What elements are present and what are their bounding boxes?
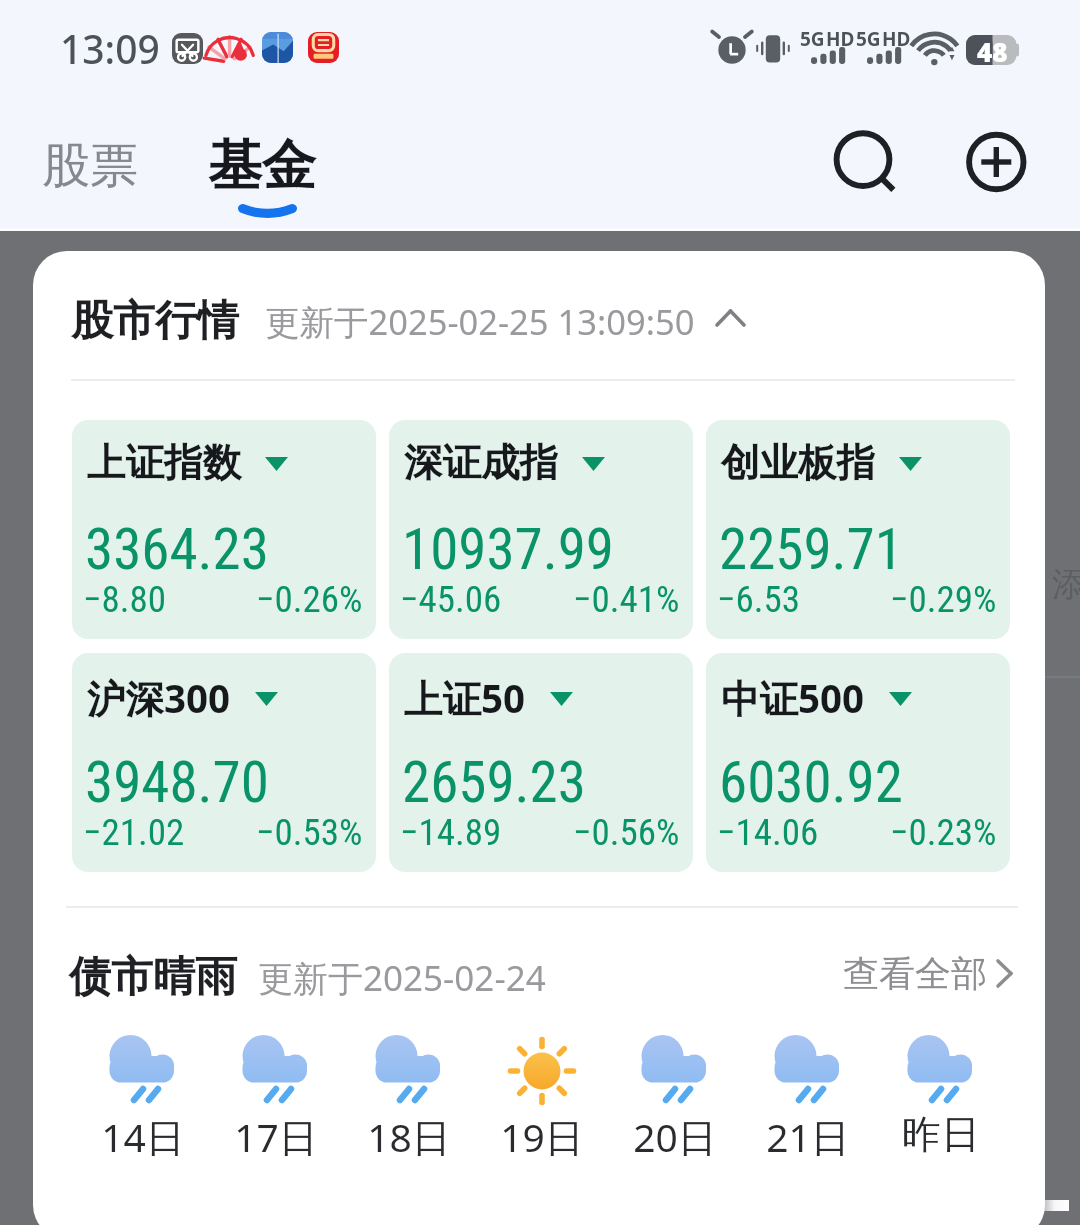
staticText: 沪深300 — [87, 672, 231, 725]
staticText: −14.06 — [717, 811, 819, 854]
button[interactable]: 昨日 — [879, 1027, 1003, 1167]
button[interactable]: Search — [812, 108, 912, 208]
staticText: 6030.92 — [719, 749, 903, 816]
button[interactable]: 19日 — [480, 1027, 604, 1167]
staticText: 股市行情 — [71, 295, 239, 348]
staticText: −6.53 — [717, 578, 801, 621]
staticText: 更新于2025-02-24 — [258, 954, 546, 1002]
staticText: 基金 — [208, 132, 316, 200]
staticText: 19日 — [500, 1110, 584, 1163]
button[interactable]: 14日 — [81, 1027, 205, 1167]
staticText: 更新于2025-02-25 13:09:50 — [265, 298, 695, 345]
staticText: 中证500 — [721, 672, 865, 725]
staticText: 20日 — [633, 1110, 717, 1163]
button[interactable]: 17日 — [214, 1027, 338, 1167]
staticText: −0.26% — [256, 578, 363, 621]
button[interactable]: 上证50 — [389, 653, 693, 872]
staticText: −45.06 — [400, 578, 502, 621]
staticText: −0.29% — [890, 578, 997, 621]
staticText: 3364.23 — [85, 516, 269, 583]
staticText: −0.23% — [890, 811, 997, 854]
staticText: 上证50 — [404, 672, 526, 725]
staticText: 21日 — [766, 1110, 850, 1163]
button[interactable]: 股市行情 — [71, 295, 746, 348]
staticText: 48 — [977, 34, 1008, 64]
button[interactable]: 20日 — [613, 1027, 737, 1167]
button[interactable]: 查看全部 — [843, 951, 1013, 996]
button[interactable]: 债市晴雨 — [69, 951, 1045, 1004]
button[interactable]: 18日 — [347, 1027, 471, 1167]
button[interactable]: 创业板指 — [706, 420, 1010, 639]
button[interactable]: 深证成指 — [389, 420, 693, 639]
staticText: 创业板指 — [721, 439, 875, 488]
button[interactable]: 中证500 — [706, 653, 1010, 872]
staticText: 债市晴雨 — [69, 951, 237, 1004]
staticText: −0.41% — [573, 578, 680, 621]
staticText: 5G — [800, 26, 825, 52]
staticText: 昨日 — [902, 1110, 980, 1159]
staticText: −8.80 — [83, 578, 167, 621]
staticText: 2659.23 — [402, 749, 586, 816]
staticText: 14日 — [101, 1110, 185, 1163]
button[interactable]: 沪深300 — [72, 653, 376, 872]
staticText: −21.02 — [83, 811, 185, 854]
button[interactable]: Add — [946, 108, 1046, 208]
staticText: 深证成指 — [404, 439, 558, 488]
staticText: 3948.70 — [85, 749, 269, 816]
staticText: 17日 — [234, 1110, 318, 1163]
staticText: 添加 — [1052, 563, 1080, 606]
staticText: −0.53% — [256, 811, 363, 854]
button[interactable]: 上证指数 — [72, 420, 376, 639]
button[interactable]: 基金 — [200, 132, 324, 219]
staticText: 股票 — [42, 136, 138, 196]
staticText: 10937.99 — [402, 516, 614, 583]
staticText: HD — [826, 26, 855, 52]
staticText: 5G — [856, 26, 881, 52]
staticText: 查看全部 — [843, 951, 987, 996]
staticText: HD — [882, 26, 911, 52]
staticText: 13:09 — [60, 22, 160, 75]
button[interactable]: 21日 — [746, 1027, 870, 1167]
staticText: −0.56% — [573, 811, 680, 854]
staticText: 上证指数 — [87, 439, 241, 488]
button[interactable]: 股票 — [42, 136, 138, 196]
staticText: 18日 — [367, 1110, 451, 1163]
staticText: −14.89 — [400, 811, 502, 854]
staticText: 2259.71 — [719, 516, 903, 583]
